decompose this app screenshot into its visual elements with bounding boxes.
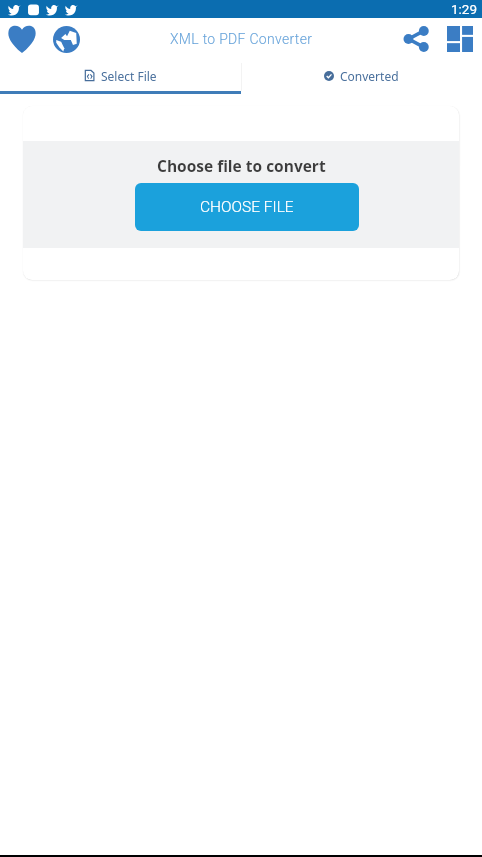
- button[interactable]: Select File: [0, 60, 241, 91]
- staticText: Select File: [101, 68, 157, 84]
- button[interactable]: CHOOSE FILE: [135, 183, 359, 231]
- staticText: 1:29: [451, 1, 478, 17]
- button[interactable]: Dashboard: [438, 18, 482, 60]
- staticText: Choose file to convert: [157, 155, 326, 176]
- staticText: CHOOSE FILE: [200, 198, 294, 216]
- button[interactable]: Converted: [241, 60, 482, 91]
- staticText: Converted: [340, 68, 399, 84]
- button[interactable]: Favourite: [0, 18, 44, 60]
- button[interactable]: Language: [44, 18, 88, 60]
- staticText: XML to PDF Converter: [170, 31, 313, 47]
- button[interactable]: Share: [394, 18, 438, 60]
